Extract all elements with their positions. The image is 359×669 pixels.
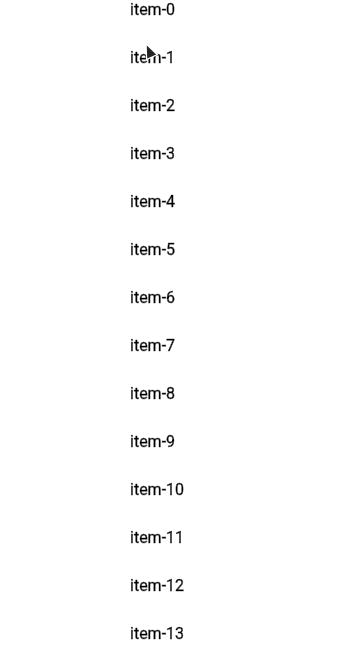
staticText: item-12 xyxy=(130,576,185,595)
staticText: item-11 xyxy=(130,528,185,547)
staticText: item-0 xyxy=(130,0,176,19)
button[interactable]: item-8 xyxy=(0,369,359,417)
staticText: item-2 xyxy=(130,96,176,115)
button[interactable]: item-10 xyxy=(0,465,359,513)
button[interactable]: item-4 xyxy=(0,177,359,225)
button[interactable]: item-3 xyxy=(0,129,359,177)
button[interactable]: item-7 xyxy=(0,321,359,369)
button[interactable]: item-1 xyxy=(0,33,359,81)
staticText: item-10 xyxy=(130,480,185,499)
button[interactable]: item-11 xyxy=(0,513,359,561)
button[interactable]: item-13 xyxy=(0,609,359,657)
button[interactable]: item-6 xyxy=(0,273,359,321)
staticText: item-9 xyxy=(130,432,176,451)
staticText: item-8 xyxy=(130,384,176,403)
button[interactable]: item-5 xyxy=(0,225,359,273)
staticText: item-11 xyxy=(130,528,185,547)
staticText: item-1 xyxy=(130,48,176,67)
staticText: item-6 xyxy=(130,288,176,307)
staticText: item-0 xyxy=(130,0,176,19)
button[interactable]: item-9 xyxy=(0,417,359,465)
staticText: item-3 xyxy=(130,144,176,163)
staticText: item-2 xyxy=(130,96,176,115)
button[interactable]: item-0 xyxy=(0,0,359,33)
staticText: item-4 xyxy=(130,192,176,211)
staticText: item-1 xyxy=(130,48,176,67)
button[interactable]: item-12 xyxy=(0,561,359,609)
staticText: item-4 xyxy=(130,192,176,211)
staticText: item-5 xyxy=(130,240,176,259)
staticText: item-8 xyxy=(130,384,176,403)
button[interactable]: item-2 xyxy=(0,81,359,129)
staticText: item-7 xyxy=(130,336,176,355)
staticText: item-9 xyxy=(130,432,176,451)
staticText: item-6 xyxy=(130,288,176,307)
staticText: item-3 xyxy=(130,144,176,163)
staticText: item-13 xyxy=(130,624,185,643)
staticText: item-7 xyxy=(130,336,176,355)
staticText: item-5 xyxy=(130,240,176,259)
staticText: item-10 xyxy=(130,480,185,499)
staticText: item-13 xyxy=(130,624,185,643)
staticText: item-12 xyxy=(130,576,185,595)
